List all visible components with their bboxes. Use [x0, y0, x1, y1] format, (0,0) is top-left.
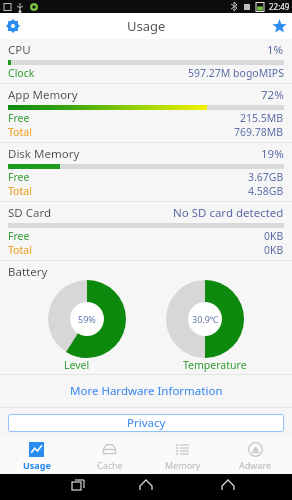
staticText: Adware — [239, 459, 272, 471]
staticText: 0KB — [264, 229, 284, 243]
button[interactable]: App Memory — [0, 84, 292, 142]
staticText: Total — [8, 125, 32, 139]
button[interactable]: Adware — [219, 438, 292, 474]
staticText: Disk Memory — [8, 146, 80, 162]
staticText: Usage — [127, 17, 166, 35]
staticText: Privacy — [127, 415, 166, 431]
staticText: 597.27M bogoMIPS — [188, 66, 284, 80]
button[interactable]: SD Card — [0, 202, 292, 260]
staticText: 769.78MB — [234, 125, 284, 139]
staticText: 30.9℃ — [192, 313, 219, 325]
staticText: Temperature — [183, 358, 247, 372]
button[interactable]: CPU — [0, 39, 292, 83]
staticText: Free — [8, 111, 30, 125]
staticText: No SD card detected — [173, 205, 284, 221]
staticText: More Hardware Information — [70, 383, 223, 399]
staticText: 0KB — [264, 243, 284, 257]
staticText: Usage — [23, 459, 51, 471]
staticText: Free — [8, 229, 30, 243]
button[interactable]: Privacy — [8, 414, 284, 432]
button[interactable]: More Hardware Information — [0, 375, 292, 407]
staticText: Total — [8, 243, 32, 257]
staticText: 59% — [78, 313, 96, 325]
staticText: Cache — [97, 459, 123, 471]
staticText: Clock — [8, 66, 35, 80]
staticText: Free — [8, 170, 30, 184]
staticText: Total — [8, 184, 32, 198]
button[interactable]: Settings — [0, 13, 26, 39]
staticText: SD Card — [8, 205, 52, 221]
staticText: 215.5MB — [240, 111, 284, 125]
button[interactable]: 59% — [48, 280, 126, 358]
staticText: 1% — [267, 42, 284, 58]
staticText: Memory — [165, 459, 201, 471]
staticText: 72% — [261, 87, 284, 103]
button[interactable]: 30.9℃ — [166, 280, 244, 358]
staticText: CPU — [8, 42, 31, 58]
button[interactable]: Favorite — [266, 13, 292, 39]
staticText: Battery — [8, 264, 48, 280]
staticText: 4.58GB — [248, 184, 284, 198]
staticText: 19% — [261, 146, 284, 162]
staticText: 3.67GB — [248, 170, 284, 184]
staticText: 22:49 — [269, 1, 290, 12]
button[interactable]: Cache — [73, 438, 146, 474]
button[interactable]: Usage — [0, 438, 73, 474]
button[interactable]: Memory — [146, 438, 219, 474]
staticText: App Memory — [8, 87, 78, 103]
button[interactable]: Disk Memory — [0, 143, 292, 201]
staticText: Level — [64, 358, 90, 372]
